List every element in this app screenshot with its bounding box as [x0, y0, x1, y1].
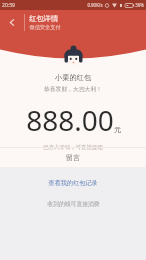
staticText: 888.00	[26, 101, 114, 139]
staticText: 36%	[135, 2, 144, 8]
staticText: 微信安全支付	[29, 24, 61, 31]
button[interactable]: 查看我的红包记录	[0, 174, 146, 192]
staticText: 元	[114, 125, 121, 134]
staticText: 收到的钱可直接消费	[47, 200, 100, 207]
button[interactable]: 留言	[0, 148, 146, 167]
staticText: 已存入零钱，可直接提现	[43, 144, 103, 151]
staticText: 0.90K/s	[87, 2, 103, 8]
staticText: 红包详情	[29, 14, 58, 23]
button[interactable]: Back	[0, 10, 24, 34]
staticText: 留言	[66, 153, 80, 162]
staticText: 小栗的红包	[55, 73, 91, 82]
staticText: 查看我的红包记录	[48, 179, 98, 187]
staticText: 20:59	[2, 2, 15, 9]
staticText: 恭喜发财，大吉大利！	[44, 85, 102, 92]
